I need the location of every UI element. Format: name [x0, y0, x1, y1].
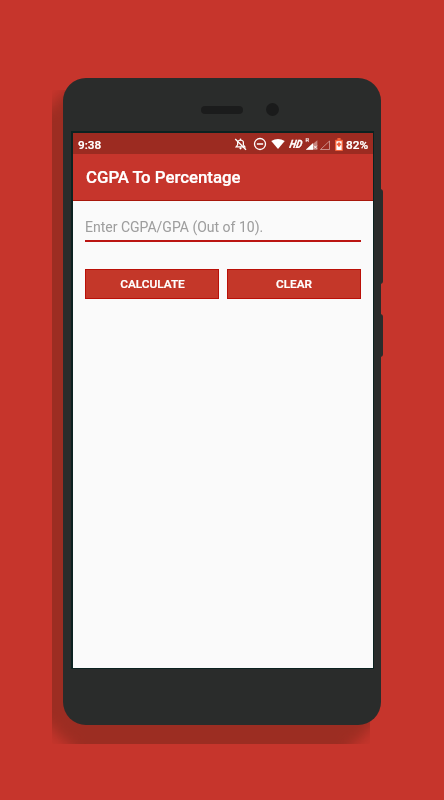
staticText: CLEAR — [276, 277, 312, 291]
staticText: Enter CGPA/GPA (Out of 10). — [85, 219, 264, 235]
staticText: 82% — [346, 138, 369, 152]
staticText: 9:38 — [78, 138, 102, 152]
staticText: CALCULATE — [120, 277, 185, 291]
button[interactable]: CALCULATE — [86, 270, 218, 298]
staticText: HD — [289, 137, 301, 151]
button[interactable]: CLEAR — [228, 270, 360, 298]
staticText: CGPA To Percentage — [86, 167, 241, 187]
